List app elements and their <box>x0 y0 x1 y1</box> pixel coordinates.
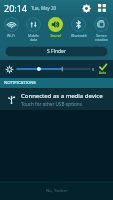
staticText: Connected as a media device <box>21 92 103 100</box>
staticText: Wi-Fi <box>7 33 15 38</box>
button[interactable]: Mobile data <box>22 16 44 42</box>
button[interactable]: Bluetooth <box>67 16 90 42</box>
button[interactable]: Sound <box>44 16 67 42</box>
button[interactable]: S Finder <box>5 46 108 57</box>
button[interactable]: Screen rotation <box>90 16 113 42</box>
staticText: Sound <box>50 33 61 38</box>
button[interactable]: Wi-Fi <box>0 16 22 42</box>
staticText: S Finder <box>47 48 66 55</box>
staticText: Mobile data <box>28 33 39 42</box>
staticText: Screen rotation <box>95 33 108 42</box>
button[interactable]: Connected as a media device <box>0 88 113 110</box>
staticText: NOTIFICATIONS <box>4 80 36 86</box>
button[interactable]: Brightness slider <box>17 63 90 75</box>
staticText: No, Twitter <box>46 188 68 194</box>
staticText: Touch for other USB options <box>21 101 82 107</box>
staticText: 5 <box>92 67 95 72</box>
button[interactable]: Brightness <box>4 64 15 75</box>
staticText: Tue, May 20 <box>31 5 57 11</box>
button[interactable]: Auto brightness <box>97 63 109 75</box>
staticText: 20:14 <box>4 2 28 14</box>
button[interactable]: Edit quick settings <box>95 1 109 15</box>
button[interactable]: Settings <box>79 1 93 15</box>
staticText: Bluetooth <box>71 33 87 38</box>
staticText: Auto <box>99 71 107 75</box>
